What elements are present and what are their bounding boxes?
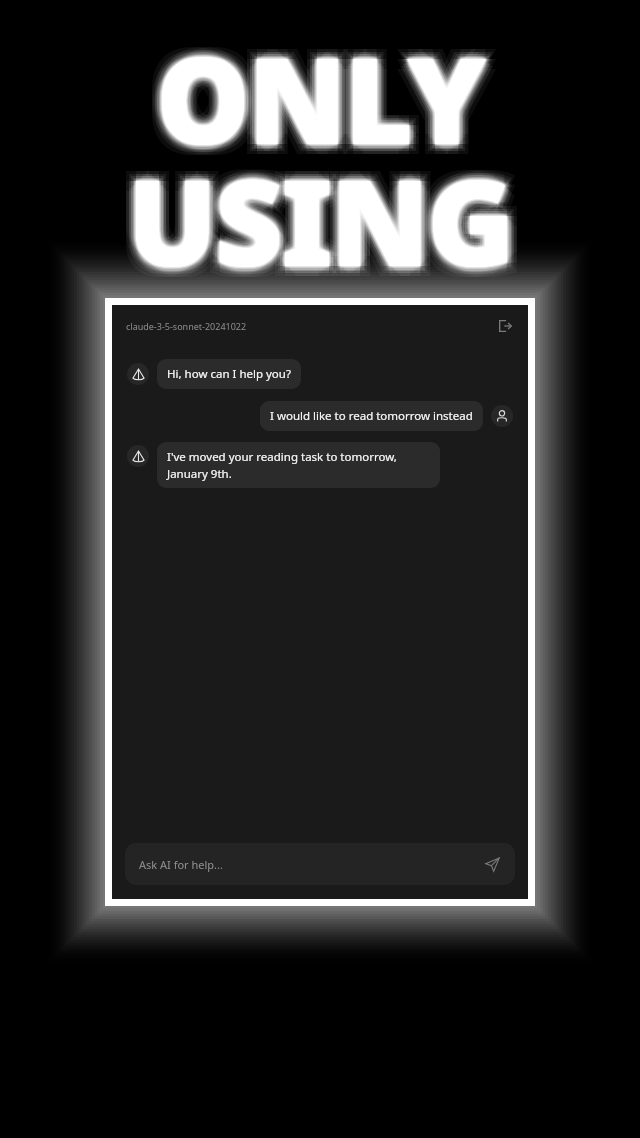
staticText: ONLY bbox=[0, 11, 633, 172]
staticText: ONLY bbox=[0, 18, 637, 179]
staticText: ONLY bbox=[0, 15, 640, 176]
staticText: ONLY bbox=[0, 19, 640, 180]
staticText: USING bbox=[2, 142, 640, 303]
staticText: USING bbox=[0, 145, 640, 306]
staticText: USING bbox=[0, 144, 640, 305]
staticText: ONLY bbox=[0, 8, 630, 169]
staticText: ONLY bbox=[0, 18, 633, 179]
staticText: USING bbox=[5, 145, 640, 306]
staticText: USING bbox=[7, 147, 640, 308]
staticText: ONLY bbox=[0, 17, 640, 178]
staticText: USING bbox=[5, 140, 640, 301]
staticText: USING bbox=[0, 135, 635, 296]
staticText: ONLY bbox=[0, 17, 639, 178]
staticText: ONLY bbox=[4, 15, 640, 176]
staticText: USING bbox=[0, 137, 640, 298]
staticText: USING bbox=[5, 135, 640, 296]
staticText: USING bbox=[0, 139, 640, 300]
staticText: ONLY bbox=[2, 18, 640, 179]
staticText: USING bbox=[0, 138, 638, 299]
staticText: ONLY bbox=[2, 20, 640, 181]
staticText: USING bbox=[0, 142, 640, 303]
staticText: Hi, how can I help you? bbox=[167, 366, 291, 382]
staticText: ONLY bbox=[0, 18, 635, 179]
staticText: ONLY bbox=[0, 20, 638, 181]
staticText: USING bbox=[4, 137, 640, 298]
staticText: USING bbox=[0, 140, 635, 301]
staticText: ONLY bbox=[0, 22, 637, 183]
staticText: ONLY bbox=[0, 23, 640, 184]
staticText: ONLY bbox=[0, 16, 638, 177]
staticText: ONLY bbox=[10, 28, 640, 189]
button[interactable]: Sign out bbox=[494, 315, 516, 337]
staticText: USING bbox=[0, 140, 630, 301]
staticText: USING bbox=[0, 130, 630, 291]
button[interactable]: Hi, how can I help you? bbox=[157, 359, 301, 389]
staticText: ONLY bbox=[0, 16, 640, 177]
staticText: ONLY bbox=[2, 16, 640, 177]
staticText: ONLY bbox=[5, 13, 640, 174]
button[interactable]: I would like to read tomorrow instead bbox=[260, 401, 483, 431]
staticText: Ask AI for help... bbox=[139, 857, 223, 872]
staticText: ONLY bbox=[7, 25, 640, 186]
staticText: ONLY bbox=[5, 23, 640, 184]
staticText: ONLY bbox=[0, 23, 635, 184]
staticText: ONLY bbox=[0, 25, 640, 186]
staticText: ONLY bbox=[0, 11, 640, 172]
staticText: ONLY bbox=[5, 18, 640, 179]
staticText: USING bbox=[0, 142, 638, 303]
staticText: USING bbox=[1, 140, 640, 301]
staticText: USING bbox=[0, 135, 640, 296]
staticText: USING bbox=[4, 144, 640, 305]
staticText: ONLY bbox=[0, 19, 639, 180]
staticText: ONLY bbox=[1, 17, 640, 178]
staticText: ONLY bbox=[0, 25, 633, 186]
staticText: USING bbox=[0, 140, 638, 301]
staticText: USING bbox=[2, 140, 640, 301]
staticText: USING bbox=[0, 140, 637, 301]
button[interactable]: Ask AI for help... bbox=[125, 843, 515, 885]
staticText: USING bbox=[4, 140, 640, 301]
staticText: USING bbox=[0, 145, 635, 306]
staticText: ONLY bbox=[1, 18, 640, 179]
staticText: USING bbox=[0, 140, 633, 301]
staticText: USING bbox=[10, 140, 640, 301]
staticText: USING bbox=[0, 141, 639, 302]
staticText: USING bbox=[10, 130, 640, 291]
staticText: ONLY bbox=[7, 11, 640, 172]
staticText: USING bbox=[0, 147, 640, 308]
staticText: USING bbox=[0, 140, 640, 301]
staticText: USING bbox=[0, 133, 633, 294]
staticText: claude-3-5-sonnet-20241022 bbox=[126, 320, 247, 332]
staticText: USING bbox=[0, 140, 639, 301]
staticText: USING bbox=[0, 130, 640, 291]
staticText: USING bbox=[7, 133, 640, 294]
staticText: ONLY bbox=[0, 18, 640, 179]
staticText: USING bbox=[0, 144, 637, 305]
staticText: USING bbox=[1, 139, 640, 300]
staticText: USING bbox=[0, 147, 633, 308]
staticText: ONLY bbox=[0, 13, 640, 174]
button[interactable]: I've moved your reading task to tomorrow… bbox=[157, 442, 440, 488]
staticText: I would like to read tomorrow instead bbox=[270, 408, 473, 424]
staticText: USING bbox=[0, 150, 640, 311]
staticText: USING bbox=[0, 150, 630, 311]
button[interactable]: Send bbox=[481, 853, 503, 875]
staticText: ONLY bbox=[0, 8, 640, 169]
staticText: USING bbox=[7, 140, 640, 301]
staticText: ONLY bbox=[1, 19, 640, 180]
staticText: ONLY bbox=[0, 18, 638, 179]
staticText: USING bbox=[0, 137, 637, 298]
staticText: ONLY bbox=[0, 18, 639, 179]
staticText: ONLY bbox=[10, 8, 640, 169]
staticText: ONLY bbox=[0, 15, 637, 176]
staticText: USING bbox=[2, 138, 640, 299]
staticText: I've moved your reading task to tomorrow… bbox=[167, 449, 430, 481]
staticText: ONLY bbox=[0, 28, 640, 189]
staticText: ONLY bbox=[0, 18, 630, 179]
staticText: USING bbox=[0, 141, 640, 302]
staticText: ONLY bbox=[0, 28, 630, 189]
staticText: ONLY bbox=[0, 20, 640, 181]
staticText: ONLY bbox=[4, 22, 640, 183]
staticText: USING bbox=[0, 139, 639, 300]
